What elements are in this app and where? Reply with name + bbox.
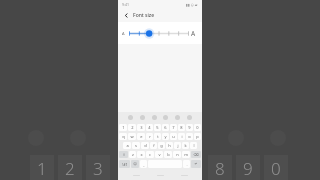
button[interactable]: Home (154, 172, 166, 178)
button[interactable]: v (155, 151, 163, 158)
button[interactable]: Back (122, 11, 131, 20)
staticText: 6 (164, 125, 167, 130)
button[interactable]: n (173, 151, 181, 158)
staticText: 3 (93, 157, 103, 180)
staticText: 0 (196, 125, 199, 130)
button[interactable]: Recents (130, 172, 142, 178)
button[interactable]: Keyboard tool (140, 115, 145, 120)
button[interactable]: l (190, 142, 197, 149)
staticText: 8 (215, 157, 225, 180)
button[interactable]: Backspace (191, 151, 201, 158)
button[interactable]: h (166, 142, 173, 149)
button[interactable]: Keyboard tool (187, 115, 192, 120)
staticText: v (158, 152, 161, 157)
button[interactable]: i (178, 133, 185, 140)
staticText: u (172, 134, 175, 139)
button[interactable]: e (137, 133, 145, 140)
button[interactable]: w (128, 133, 136, 140)
button[interactable]: 4 (146, 124, 153, 131)
staticText: 1 (37, 157, 47, 180)
button[interactable]: d (141, 142, 149, 149)
button[interactable]: 7 (170, 124, 177, 131)
button[interactable]: , (140, 160, 147, 168)
staticText: ⇧ (122, 153, 126, 157)
staticText: x (140, 152, 143, 157)
staticText: 9 (188, 125, 191, 130)
staticText: 1 (122, 125, 125, 130)
button[interactable]: c (146, 151, 154, 158)
button[interactable]: 5 (154, 124, 161, 131)
staticText: j (177, 143, 179, 148)
staticText: p (196, 134, 199, 139)
button[interactable]: 2 (128, 124, 136, 131)
staticText: , (143, 162, 145, 167)
button[interactable]: u (170, 133, 177, 140)
staticText: ↵ (194, 162, 198, 166)
button[interactable]: 0 (194, 124, 201, 131)
button[interactable]: x (137, 151, 145, 158)
staticText: a (126, 143, 129, 148)
button[interactable]: Keyboard tool (163, 115, 168, 120)
button[interactable]: k (182, 142, 189, 149)
staticText: c (149, 152, 151, 157)
staticText: 7 (172, 125, 175, 130)
staticText: n (176, 152, 179, 157)
staticText: k (184, 143, 187, 148)
staticText: 2 (131, 125, 134, 130)
staticText: . (186, 162, 188, 167)
staticText: w (130, 134, 134, 139)
button[interactable]: Symbols (119, 160, 130, 168)
staticText: ⌫ (193, 153, 199, 157)
staticText: 0 (271, 157, 281, 180)
button[interactable]: Keyboard tool (175, 115, 180, 120)
button[interactable]: 8 (178, 124, 185, 131)
staticText: 5 (156, 125, 159, 130)
button[interactable]: j (174, 142, 181, 149)
button[interactable]: y (162, 133, 169, 140)
staticText: s (135, 143, 137, 148)
button[interactable]: r (146, 133, 153, 140)
button[interactable]: Shift (119, 151, 128, 158)
button[interactable]: 1 (119, 124, 127, 131)
staticText: d (144, 143, 147, 148)
staticText: i (181, 134, 183, 139)
staticText: A (191, 29, 198, 38)
staticText: b (167, 152, 170, 157)
button[interactable]: b (164, 151, 172, 158)
button[interactable]: s (132, 142, 140, 149)
button[interactable]: z (129, 151, 136, 158)
button[interactable]: t (154, 133, 161, 140)
button[interactable]: Keyboard tool (128, 115, 133, 120)
staticText: q (122, 134, 125, 139)
button[interactable]: A (118, 22, 202, 44)
button[interactable]: Emoji (131, 160, 139, 168)
button[interactable]: p (194, 133, 201, 140)
button[interactable]: o (186, 133, 193, 140)
staticText: h (168, 143, 171, 148)
button[interactable]: 6 (162, 124, 169, 131)
staticText: 8 (180, 125, 183, 130)
staticText: f (153, 143, 155, 148)
button[interactable]: Keyboard tool (152, 115, 157, 120)
staticText: 3 (140, 125, 143, 130)
button[interactable]: 9 (186, 124, 193, 131)
button[interactable]: 3 (137, 124, 145, 131)
staticText: A (122, 31, 128, 36)
staticText: 9 (243, 157, 253, 180)
staticText: 2 (65, 157, 75, 180)
staticText: y (164, 134, 167, 139)
staticText: g (160, 143, 163, 148)
button[interactable]: Enter (191, 160, 201, 168)
button[interactable]: Back (178, 172, 190, 178)
button[interactable]: m (182, 151, 190, 158)
staticText: 4 (148, 125, 151, 130)
staticText: z (132, 152, 134, 157)
button[interactable]: g (158, 142, 165, 149)
staticText: o (188, 134, 191, 139)
staticText: ☺ (133, 162, 137, 166)
button[interactable]: f (150, 142, 157, 149)
button[interactable]: a (123, 142, 131, 149)
button[interactable]: q (119, 133, 127, 140)
